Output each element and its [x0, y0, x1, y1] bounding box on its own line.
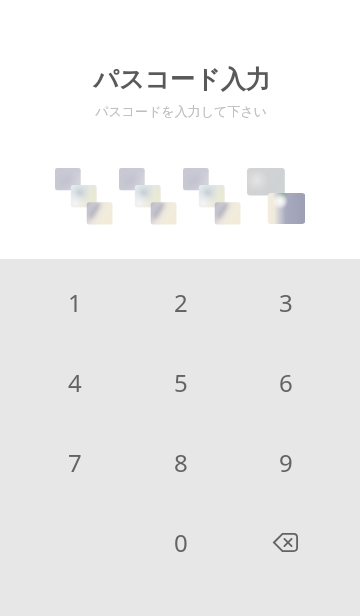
button[interactable]: 5	[128, 342, 233, 422]
staticText: 0	[174, 526, 188, 559]
staticText: 4	[68, 366, 82, 399]
button[interactable]: 8	[128, 422, 233, 502]
button[interactable]: 7	[22, 422, 128, 502]
button[interactable]: 3	[233, 262, 338, 342]
other: Backspace	[273, 533, 298, 552]
staticText: パスコードを入力して下さい	[95, 103, 267, 119]
staticText: 5	[174, 366, 188, 399]
button[interactable]: 4	[22, 342, 128, 422]
button[interactable]: 9	[233, 422, 338, 502]
staticText: 9	[279, 446, 293, 479]
staticText: 3	[279, 286, 293, 319]
staticText: 1	[68, 286, 82, 319]
button[interactable]: 2	[128, 262, 233, 342]
button[interactable]: Backspace	[233, 502, 338, 582]
staticText: 2	[174, 286, 188, 319]
staticText: 6	[279, 366, 293, 399]
staticText: パスコード入力	[93, 64, 271, 95]
button[interactable]: 6	[233, 342, 338, 422]
staticText: 7	[68, 446, 82, 479]
button[interactable]: 0	[128, 502, 233, 582]
staticText: 8	[174, 446, 188, 479]
button[interactable]: 1	[22, 262, 128, 342]
